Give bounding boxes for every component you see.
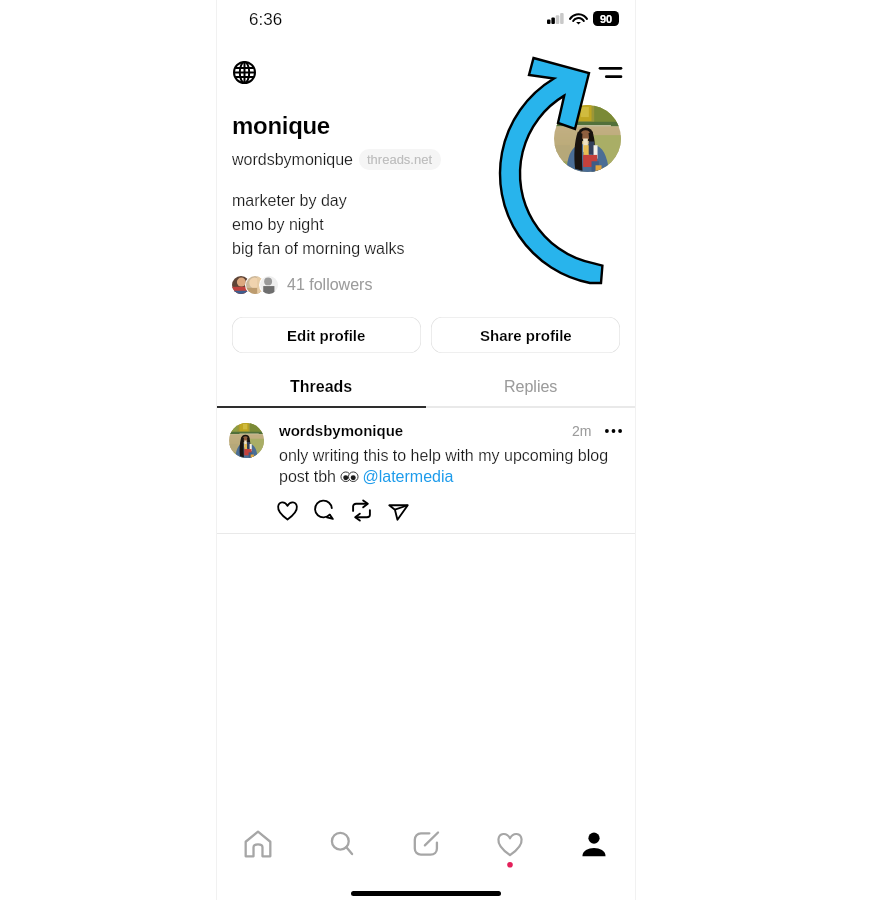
staticText: big fan of morning walks bbox=[232, 240, 405, 258]
button[interactable]: Threads bbox=[216, 368, 426, 405]
button[interactable]: Edit profile bbox=[232, 317, 421, 353]
staticText: @latermedia bbox=[358, 468, 454, 486]
staticText: only writing this to help with my upcomi… bbox=[279, 447, 609, 465]
button[interactable]: Home bbox=[216, 816, 300, 872]
staticText: 2m bbox=[572, 423, 592, 439]
staticText: Share profile bbox=[480, 327, 572, 344]
button[interactable]: Repost bbox=[349, 498, 374, 523]
button[interactable]: More options bbox=[603, 421, 623, 441]
staticText: monique bbox=[232, 112, 330, 139]
button[interactable]: New thread bbox=[384, 816, 468, 872]
staticText: wordsbymonique bbox=[232, 151, 353, 169]
staticText: Replies bbox=[504, 378, 558, 396]
button[interactable]: Search bbox=[300, 816, 384, 872]
staticText: Threads bbox=[290, 378, 353, 396]
staticText: wordsbymonique bbox=[279, 422, 404, 439]
button[interactable]: Reply bbox=[312, 498, 337, 523]
button[interactable]: Share profile bbox=[431, 317, 620, 353]
button[interactable]: Replies bbox=[426, 368, 636, 405]
button[interactable]: Profile bbox=[552, 816, 636, 872]
staticText: 41 followers bbox=[287, 276, 373, 294]
staticText: 6:36 bbox=[249, 10, 283, 29]
button[interactable]: Share bbox=[386, 498, 411, 523]
button[interactable]: Menu bbox=[594, 56, 626, 88]
staticText: Edit profile bbox=[287, 327, 366, 344]
button[interactable]: Language bbox=[228, 56, 260, 88]
staticText: marketer by day bbox=[232, 192, 347, 210]
button[interactable]: Activity bbox=[468, 816, 552, 872]
button[interactable]: Like bbox=[275, 498, 300, 523]
staticText: post tbh bbox=[279, 468, 341, 486]
staticText: threads.net bbox=[367, 152, 433, 167]
staticText: 90 bbox=[600, 13, 613, 25]
staticText: emo by night bbox=[232, 216, 324, 234]
